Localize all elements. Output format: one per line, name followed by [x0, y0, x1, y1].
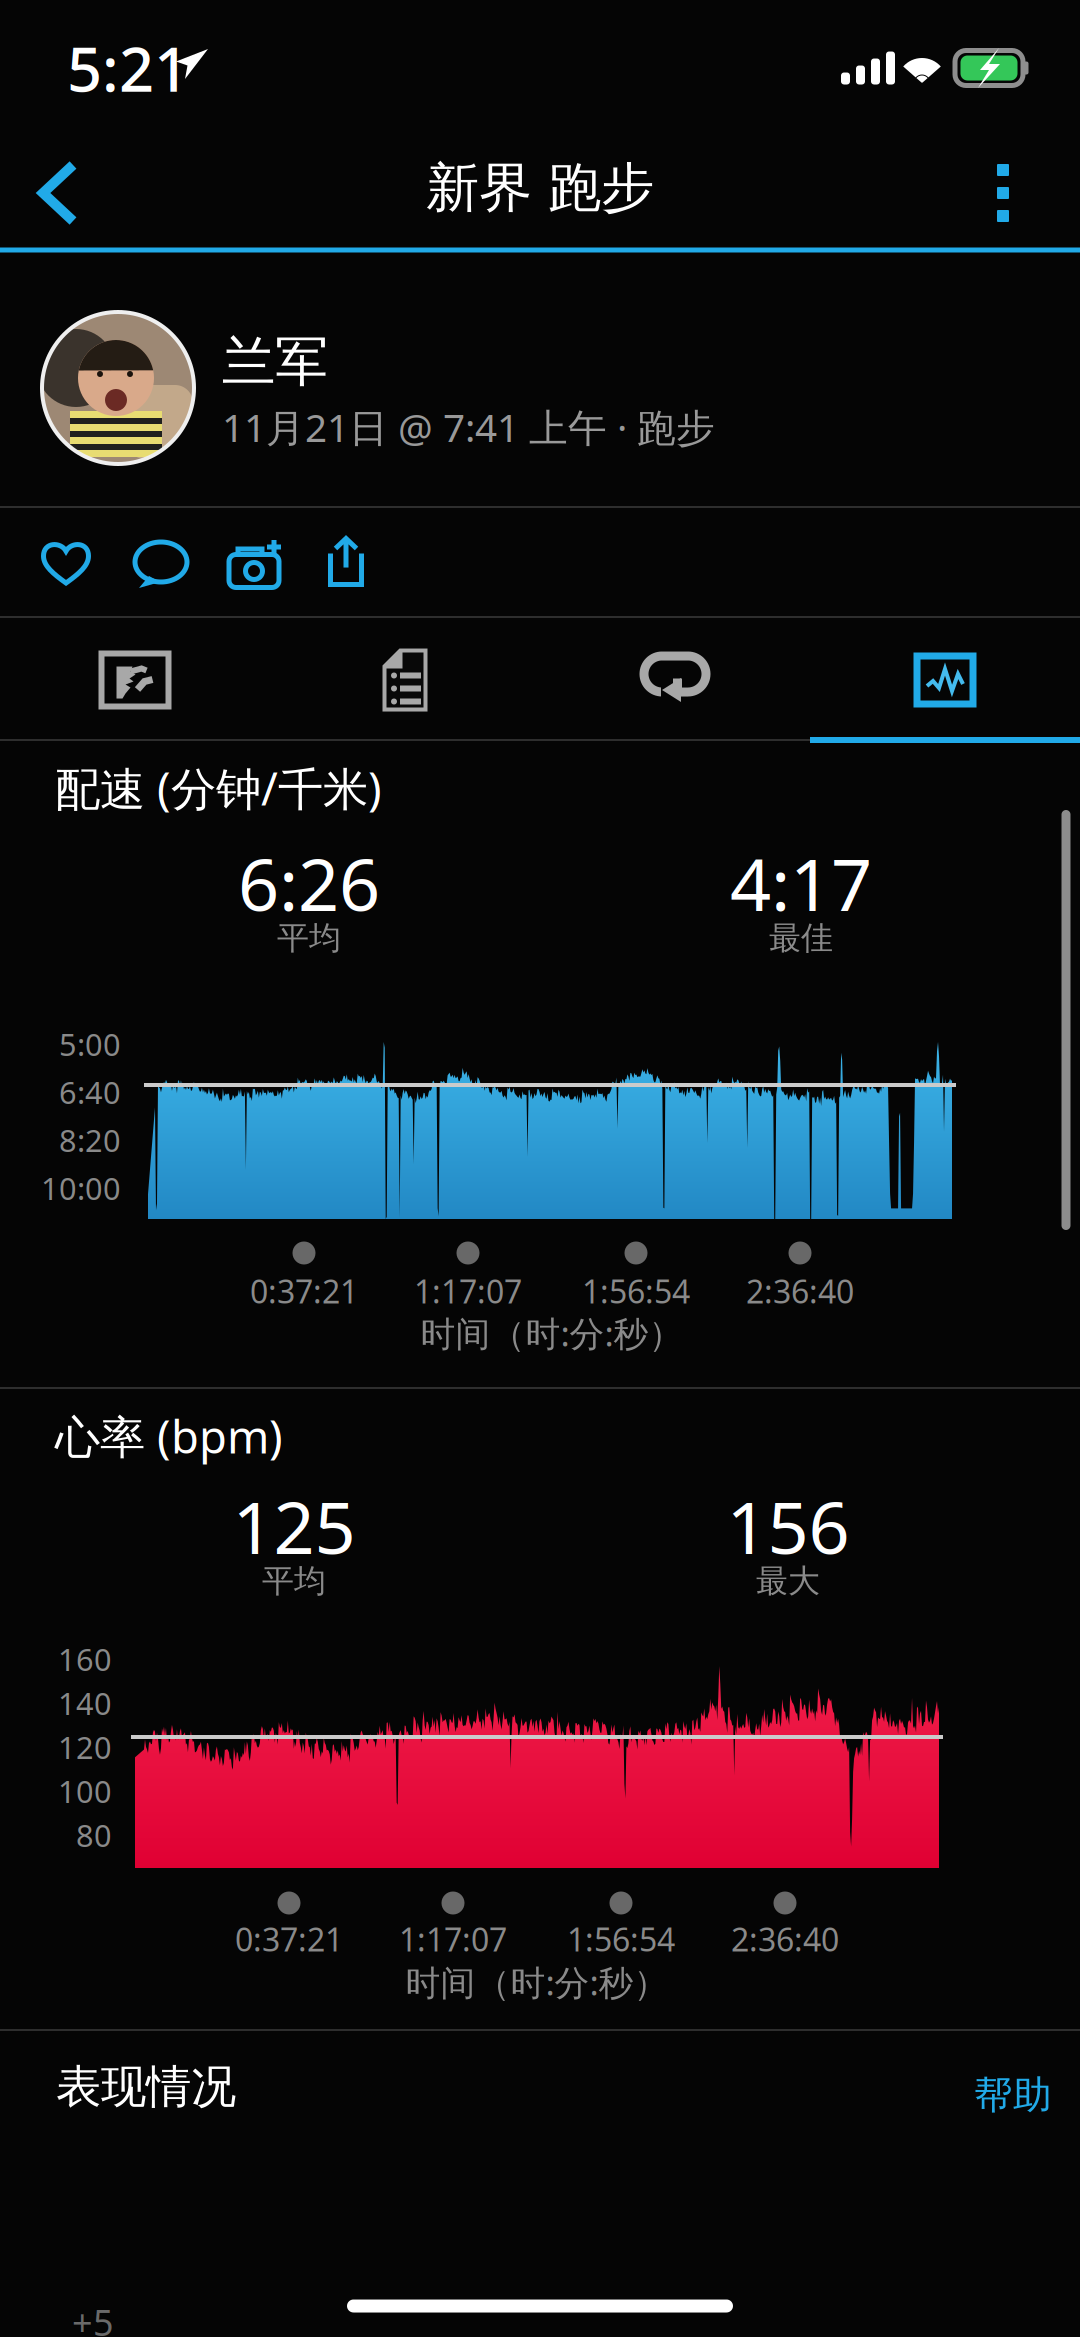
staticText: 120 — [58, 1727, 112, 1767]
staticText: 8:20 — [59, 1120, 121, 1160]
staticText: 1:17:07 — [414, 1270, 522, 1312]
staticText: 时间（时:分:秒） — [420, 1310, 683, 1356]
staticText: 2:36:40 — [731, 1918, 839, 1960]
staticText: 10:00 — [41, 1168, 121, 1208]
staticText: 0:37:21 — [235, 1918, 343, 1960]
staticText: 160 — [58, 1639, 112, 1679]
staticText: 5:00 — [59, 1024, 121, 1064]
staticText: 心率 (bpm) — [55, 1406, 283, 1466]
staticText: 5:21 — [67, 27, 189, 109]
button[interactable]: Comment — [106, 513, 216, 615]
staticText: 配速 (分钟/千米) — [55, 758, 382, 818]
button[interactable]: Add photo — [202, 513, 312, 615]
staticText: 表现情况 — [56, 2059, 236, 2115]
button[interactable]: Laps — [541, 619, 809, 741]
button[interactable]: Charts — [811, 619, 1079, 741]
staticText: 1:56:54 — [567, 1918, 675, 1960]
staticText: 6:26 — [238, 835, 380, 931]
staticText: 2:36:40 — [746, 1270, 854, 1312]
button[interactable]: More options — [953, 130, 1053, 256]
staticText: 时间（时:分:秒） — [405, 1959, 668, 2005]
staticText: 1:56:54 — [582, 1270, 690, 1312]
staticText: 1:17:07 — [399, 1918, 507, 1960]
staticText: 100 — [58, 1771, 112, 1811]
staticText: 帮助 — [974, 2071, 1052, 2119]
button[interactable]: Share — [296, 511, 396, 613]
button[interactable]: Details — [271, 619, 539, 741]
staticText: 新界 跑步 — [426, 155, 654, 221]
staticText: 80 — [76, 1815, 112, 1855]
staticText: 4:17 — [730, 835, 872, 931]
button[interactable]: Like — [11, 512, 121, 614]
staticText: 0:37:21 — [250, 1270, 358, 1312]
button[interactable]: Back — [0, 130, 116, 256]
staticText: 11月21日 @ 7:41 上午 · 跑步 — [222, 401, 715, 453]
staticText: 140 — [58, 1683, 112, 1723]
button[interactable]: 帮助 — [0, 0, 1080, 2337]
staticText: 平均 — [277, 918, 341, 958]
staticText: +5 — [72, 2298, 114, 2337]
staticText: 156 — [726, 1478, 849, 1574]
staticText: 125 — [232, 1478, 355, 1574]
staticText: 最大 — [756, 1561, 820, 1601]
staticText: 兰军 — [222, 329, 328, 395]
button[interactable]: Map — [1, 619, 269, 741]
staticText: 平均 — [262, 1561, 326, 1601]
staticText: 6:40 — [59, 1072, 121, 1112]
staticText: 最佳 — [769, 918, 833, 958]
